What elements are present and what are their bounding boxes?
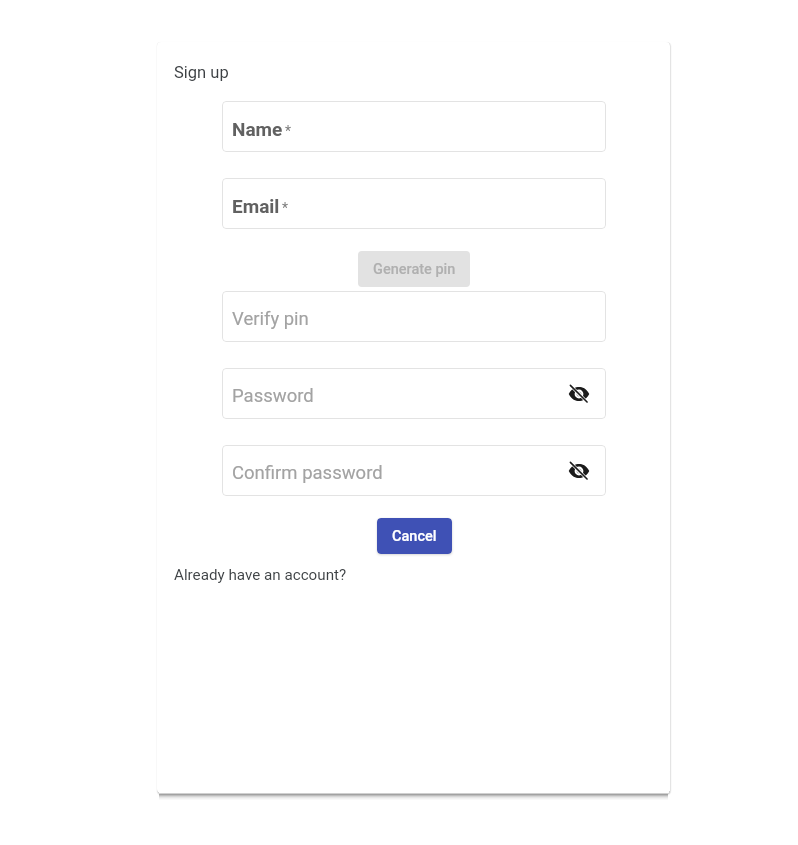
staticText: Sign up [174,63,229,82]
button[interactable]: Confirm password [222,445,606,496]
button[interactable]: Toggle password visibility [564,456,594,486]
staticText: Generate pin [373,261,456,278]
button[interactable]: Email [222,178,606,229]
button[interactable]: Toggle password visibility [564,379,594,409]
button[interactable]: Password [222,368,606,419]
button[interactable]: Already have an account? [174,566,347,584]
staticText: Name [232,118,283,140]
button[interactable]: Cancel [377,518,452,554]
staticText: Verify pin [232,308,309,330]
staticText: Password [232,385,314,407]
staticText: * [285,123,292,139]
staticText: Confirm password [232,462,383,484]
staticText: Email [232,195,280,217]
staticText: Cancel [392,528,437,545]
staticText: * [282,200,289,216]
button[interactable]: Generate pin [358,251,470,287]
button[interactable]: Verify pin [222,291,606,342]
button[interactable]: Name [222,101,606,152]
